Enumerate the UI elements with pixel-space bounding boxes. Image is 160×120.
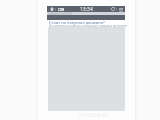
button[interactable]: Tabs: [57, 6, 64, 12]
button[interactable]: Refresh: [110, 6, 115, 12]
staticText: problem.ru/q/1234: [47, 12, 72, 15]
staticText: PROBLEM.RU: [78, 112, 110, 119]
staticText: 13:34: [80, 6, 93, 12]
staticText: Стоит ли покупать дешевле?: [49, 20, 105, 25]
staticText: Все ответы на вопросы о покупках и товар…: [49, 24, 127, 28]
button[interactable]: problem.ru/q/1234: [47, 12, 125, 15]
button[interactable]: Menu: [118, 6, 123, 12]
button[interactable]: Home: [49, 6, 54, 12]
